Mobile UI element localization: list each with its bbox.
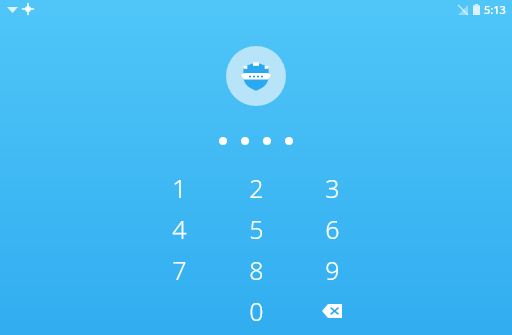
button[interactable]: 7 <box>155 251 203 289</box>
button[interactable]: 4 <box>155 210 203 248</box>
staticText: 5:13 <box>484 2 506 17</box>
button[interactable]: 8 <box>232 251 280 289</box>
button[interactable]: 3 <box>308 169 356 207</box>
button[interactable]: 1 <box>155 169 203 207</box>
button[interactable]: 6 <box>308 210 356 248</box>
staticText: 6 <box>325 212 340 246</box>
staticText: 7 <box>172 253 187 287</box>
staticText: 1 <box>172 171 187 205</box>
staticText: 4 <box>172 212 187 246</box>
button[interactable]: 0 <box>232 292 280 330</box>
staticText: 5 <box>249 212 264 246</box>
staticText: 3 <box>325 171 340 205</box>
button[interactable]: Backspace <box>308 292 356 330</box>
other: App logo <box>226 46 286 106</box>
button[interactable]: 2 <box>232 169 280 207</box>
button[interactable]: 5 <box>232 210 280 248</box>
staticText: 0 <box>249 294 264 328</box>
button[interactable]: 9 <box>308 251 356 289</box>
staticText: 9 <box>325 253 340 287</box>
staticText: 8 <box>249 253 264 287</box>
staticText: 2 <box>249 171 264 205</box>
